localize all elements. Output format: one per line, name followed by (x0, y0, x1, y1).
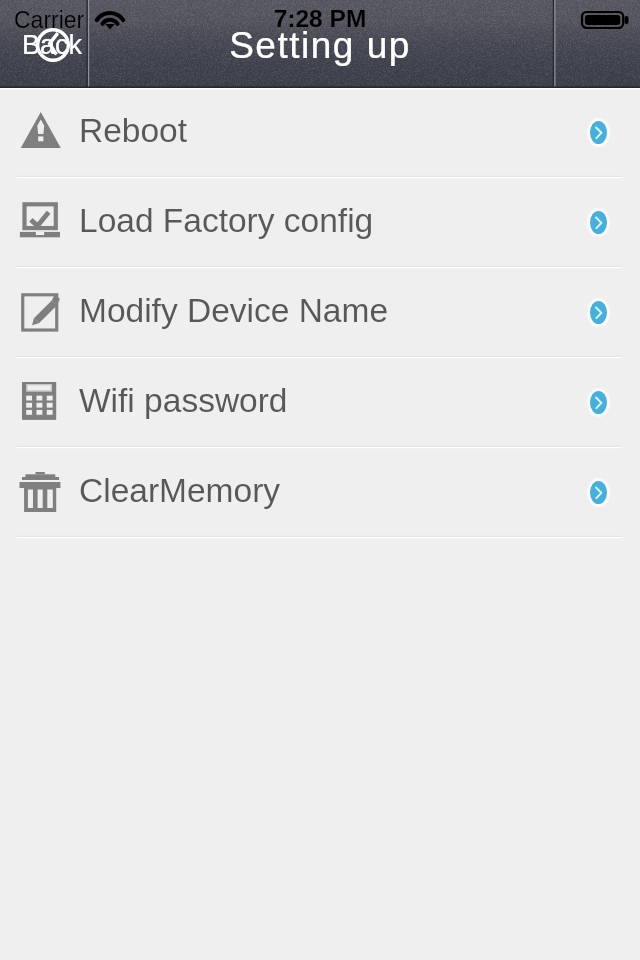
staticText: Modify Device Name (79, 292, 389, 329)
button[interactable]: Reboot (0, 88, 640, 178)
staticText: ClearMemory (79, 472, 281, 509)
staticText: Carrier (14, 7, 85, 33)
staticText: Wifi password (79, 382, 288, 419)
button[interactable]: Load Factory config (0, 178, 640, 268)
button[interactable]: Modify Device Name (0, 268, 640, 358)
button[interactable]: Back (8, 22, 86, 68)
button[interactable]: Wifi password (0, 358, 640, 448)
staticText: Setting up (0, 25, 640, 66)
staticText: Reboot (79, 112, 188, 149)
staticText: 7:28 PM (0, 5, 640, 32)
staticText: Back (22, 30, 83, 60)
staticText: Load Factory config (79, 202, 374, 239)
button[interactable]: ClearMemory (0, 448, 640, 538)
